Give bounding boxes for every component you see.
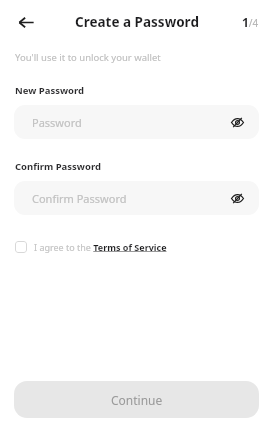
staticText: 1/4 [242,14,259,30]
button[interactable]: Show new password [225,110,249,134]
staticText: Confirm Password [15,160,101,173]
button[interactable]: Show confirm password [225,186,249,210]
button[interactable]: I agree to the Terms of Service [10,237,172,257]
button[interactable]: Back [8,4,44,40]
staticText: Confirm Password [32,191,127,206]
button[interactable]: Confirm Password [14,181,259,215]
staticText: Password [32,115,82,130]
staticText: You'll use it to unlock your wallet [15,51,161,64]
staticText: Continue [111,392,163,408]
button[interactable]: Password [14,105,259,139]
button[interactable]: Continue [14,381,259,418]
staticText: New Password [15,84,85,97]
staticText: Create a Password [75,13,199,31]
staticText: I agree to the Terms of Service [34,241,167,253]
